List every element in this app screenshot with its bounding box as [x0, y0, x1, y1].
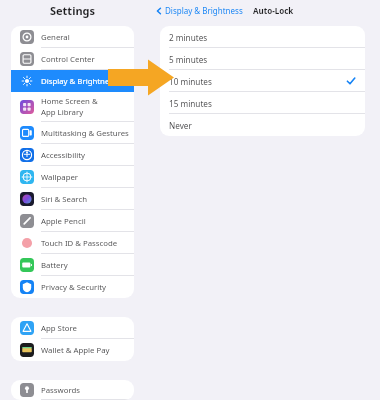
- staticText: General: [41, 32, 70, 43]
- staticText: 15 minutes: [169, 98, 212, 109]
- button[interactable]: General: [11, 26, 134, 48]
- staticText: Settings: [0, 3, 145, 18]
- staticText: Control Center: [41, 54, 95, 65]
- staticText: Home Screen &: [41, 96, 98, 107]
- button[interactable]: Multitasking & Gestures: [11, 122, 134, 144]
- staticText: Never: [169, 120, 192, 131]
- staticText: Apple Pencil: [41, 216, 86, 227]
- button[interactable]: 2 minutes: [160, 26, 365, 48]
- staticText: App Store: [41, 323, 77, 334]
- staticText: Battery: [41, 260, 68, 271]
- button[interactable]: Wallet & Apple Pay: [11, 339, 134, 361]
- button[interactable]: Control Center: [11, 48, 134, 70]
- button[interactable]: 10 minutes: [160, 70, 365, 92]
- button[interactable]: App Store: [11, 317, 134, 339]
- staticText: App Library: [41, 107, 84, 118]
- staticText: 5 minutes: [169, 54, 208, 65]
- button[interactable]: Wallpaper: [11, 166, 134, 188]
- button[interactable]: Apple Pencil: [11, 210, 134, 232]
- staticText: Display & Brightness: [41, 76, 117, 87]
- staticText: Accessibility: [41, 150, 85, 161]
- button[interactable]: Passwords: [11, 380, 134, 400]
- staticText: Privacy & Security: [41, 282, 107, 293]
- button[interactable]: Display & Brightness: [153, 3, 245, 18]
- staticText: Passwords: [41, 385, 80, 396]
- button[interactable]: Siri & Search: [11, 188, 134, 210]
- button[interactable]: Battery: [11, 254, 134, 276]
- button[interactable]: Touch ID & Passcode: [11, 232, 134, 254]
- staticText: Display & Brightness: [165, 5, 243, 16]
- staticText: 10 minutes: [169, 76, 212, 87]
- button[interactable]: Display & Brightness: [11, 70, 134, 92]
- button[interactable]: 5 minutes: [160, 48, 365, 70]
- button[interactable]: 15 minutes: [160, 92, 365, 114]
- staticText: Touch ID & Passcode: [41, 238, 118, 249]
- button[interactable]: Home Screen &: [11, 92, 134, 122]
- staticText: Siri & Search: [41, 194, 87, 205]
- staticText: Multitasking & Gestures: [41, 128, 129, 139]
- staticText: 2 minutes: [169, 32, 208, 43]
- button[interactable]: Accessibility: [11, 144, 134, 166]
- staticText: Wallpaper: [41, 172, 79, 183]
- button[interactable]: Never: [160, 114, 365, 136]
- staticText: Auto-Lock: [253, 5, 294, 16]
- button[interactable]: Privacy & Security: [11, 276, 134, 298]
- staticText: Wallet & Apple Pay: [41, 345, 110, 356]
